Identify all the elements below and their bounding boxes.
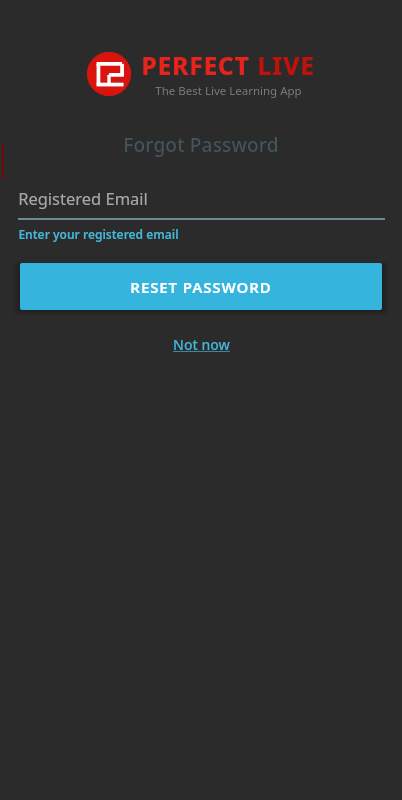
staticText: Registered Email [18, 187, 148, 209]
staticText: RESET PASSWORD [130, 277, 272, 297]
button[interactable]: Registered Email [18, 187, 385, 242]
button[interactable]: RESET PASSWORD [20, 263, 382, 310]
staticText: PERFECT [141, 48, 250, 82]
staticText: LIVE [257, 48, 315, 82]
staticText: Not now [173, 335, 230, 354]
staticText: Enter your registered email [18, 226, 179, 242]
button[interactable]: Not now [163, 331, 240, 358]
staticText: The Best Live Learning App [155, 83, 302, 99]
staticText: Forgot Password [123, 132, 279, 158]
